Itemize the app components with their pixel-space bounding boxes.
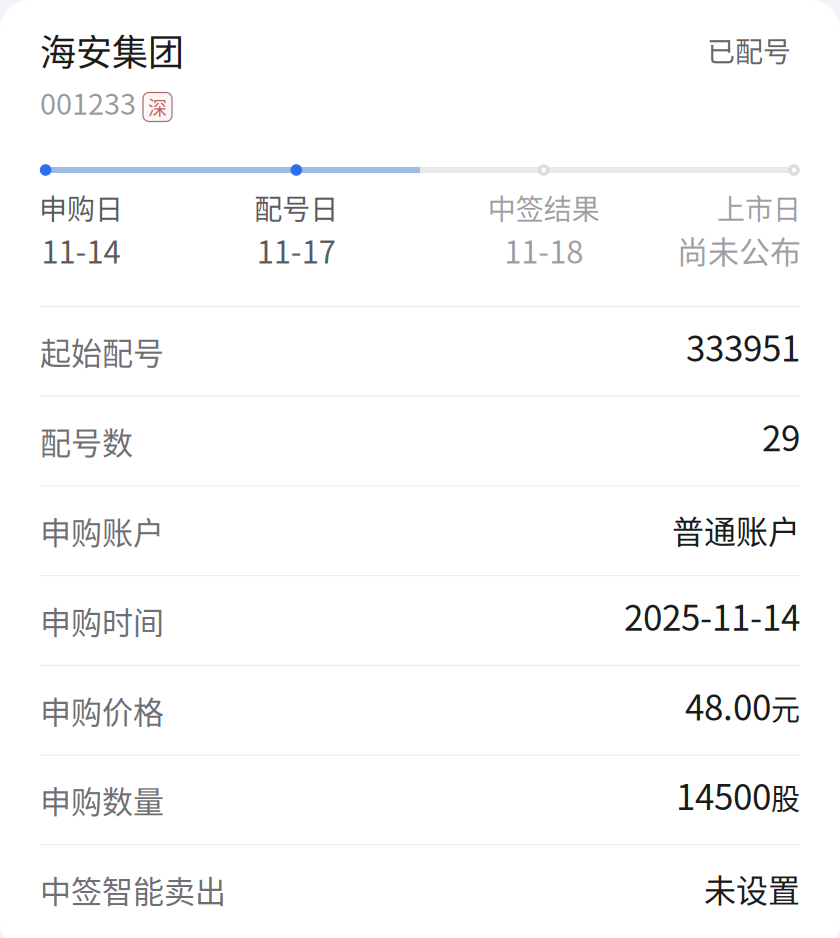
staticText: 29 <box>762 411 800 461</box>
staticText: 333951 <box>686 321 800 372</box>
staticText: 海安集团 <box>40 24 184 76</box>
staticText: 未设置 <box>704 865 800 912</box>
staticText: 申购日 <box>39 187 123 228</box>
staticText: 2025-11-14 <box>624 590 800 641</box>
staticText: 001233 <box>40 81 136 123</box>
staticText: 配号日 <box>254 187 338 228</box>
staticText: 元 <box>771 687 800 729</box>
staticText: 11-14 <box>41 228 120 272</box>
staticText: 配号数 <box>40 419 133 463</box>
staticText: 申购账户 <box>40 508 164 553</box>
staticText: 申购时间 <box>40 598 164 643</box>
staticText: 股 <box>771 776 800 818</box>
button[interactable]: 申购数量 <box>0 755 840 845</box>
staticText: 申购数量 <box>40 777 164 822</box>
staticText: 起始配号 <box>40 329 164 374</box>
staticText: 已配号 <box>707 30 791 70</box>
staticText: 11-17 <box>257 228 336 272</box>
button[interactable]: 起始配号 <box>0 307 840 397</box>
button[interactable]: 中签智能卖出 <box>0 845 840 935</box>
staticText: 深 <box>148 93 167 121</box>
staticText: 上市日 <box>717 187 801 228</box>
staticText: 中签结果 <box>488 187 600 228</box>
staticText: 14500 <box>676 769 771 820</box>
staticText: 尚未公布 <box>677 228 801 272</box>
button[interactable]: 申购账户 <box>0 486 840 576</box>
staticText: 11-18 <box>504 228 583 272</box>
staticText: 申购价格 <box>40 688 164 733</box>
button[interactable]: 申购价格 <box>0 666 840 755</box>
button[interactable]: 申购时间 <box>0 576 840 666</box>
staticText: 普通账户 <box>672 507 800 553</box>
staticText: 48.00 <box>685 680 771 730</box>
staticText: 中签智能卖出 <box>40 867 226 912</box>
button[interactable]: 配号数 <box>0 397 840 486</box>
